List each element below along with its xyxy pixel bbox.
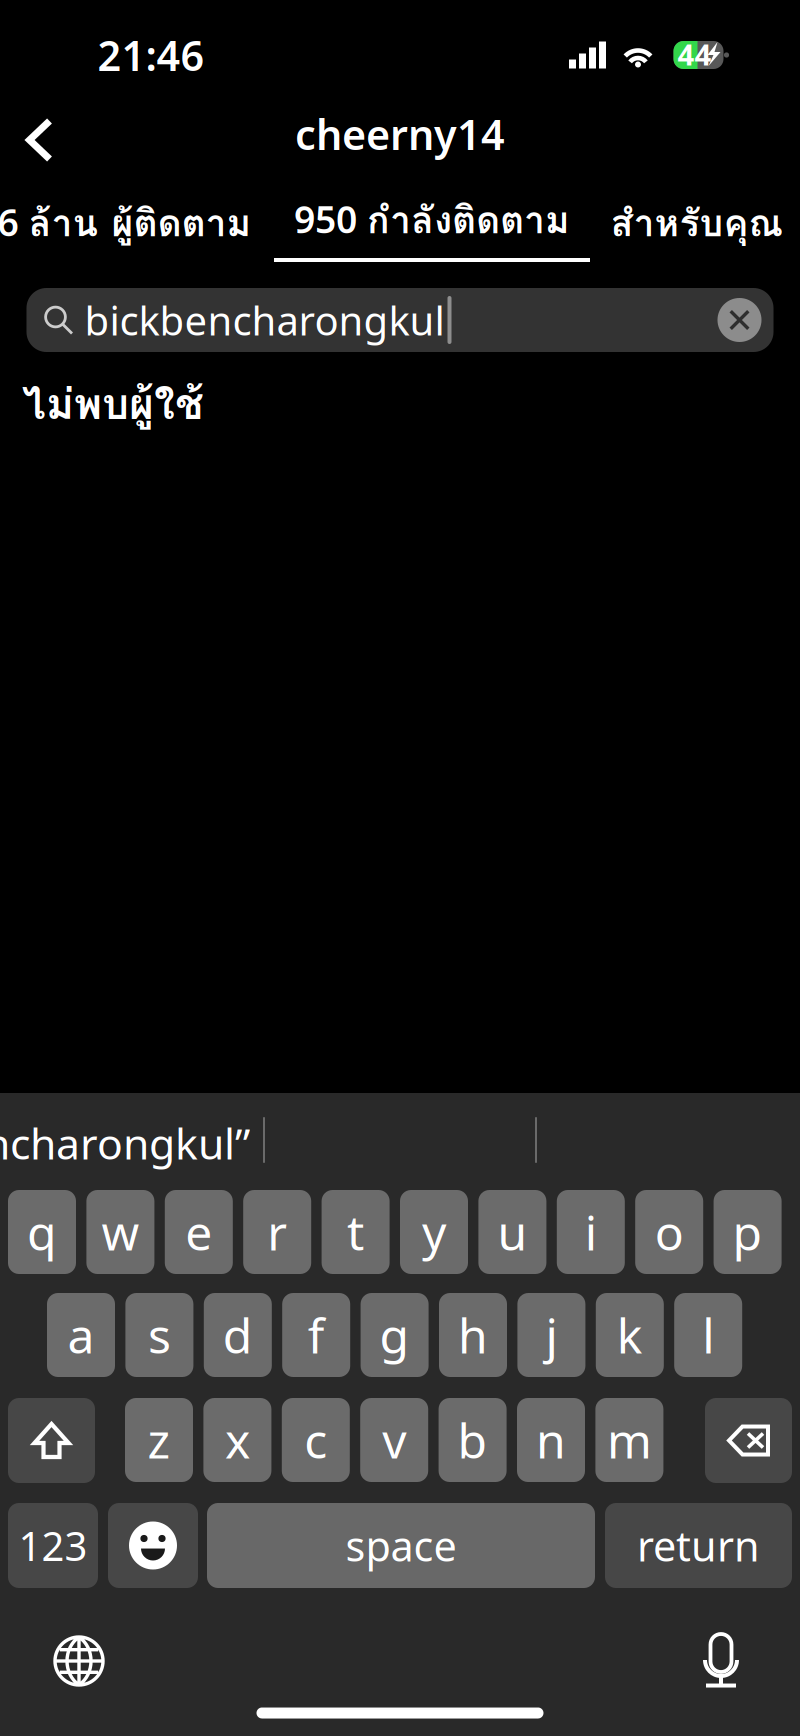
staticText: สำหรับคุณ bbox=[610, 194, 783, 252]
staticText: 21:46 bbox=[97, 28, 204, 82]
staticText: k bbox=[617, 1303, 643, 1367]
staticText: ไม่พบผู้ใช้ bbox=[22, 371, 204, 437]
staticText: n bbox=[536, 1408, 566, 1472]
button[interactable]: h bbox=[439, 1293, 507, 1377]
staticText: x bbox=[225, 1408, 250, 1472]
button[interactable]: 950 กำลังติดตาม bbox=[274, 180, 590, 266]
button[interactable]: k bbox=[596, 1293, 664, 1377]
staticText: 123 bbox=[18, 1519, 87, 1572]
button[interactable]: z bbox=[125, 1398, 193, 1482]
staticText: p bbox=[733, 1200, 763, 1264]
button[interactable]: space bbox=[207, 1503, 595, 1588]
button[interactable]: x bbox=[203, 1398, 271, 1482]
button[interactable]: Dictate bbox=[675, 1615, 767, 1707]
button[interactable]: t bbox=[322, 1190, 390, 1274]
button[interactable]: Delete bbox=[705, 1398, 792, 1483]
staticText: e bbox=[185, 1200, 212, 1264]
staticText: 950 กำลังติดตาม bbox=[294, 191, 570, 249]
staticText: space bbox=[345, 1518, 456, 1573]
staticText: bencharongkul” bbox=[0, 1115, 250, 1171]
button[interactable]: y bbox=[400, 1190, 468, 1274]
button[interactable]: a bbox=[47, 1293, 115, 1377]
staticText: o bbox=[655, 1200, 684, 1264]
staticText: y bbox=[422, 1200, 446, 1264]
staticText: a bbox=[67, 1303, 94, 1367]
staticText: g bbox=[380, 1303, 410, 1367]
staticText: cheerny14 bbox=[295, 107, 505, 161]
button[interactable]: return bbox=[605, 1503, 792, 1588]
staticText: 44 bbox=[677, 34, 711, 73]
staticText: u bbox=[497, 1200, 527, 1264]
staticText: b bbox=[458, 1408, 488, 1472]
staticText: i bbox=[585, 1200, 597, 1264]
button[interactable]: Emoji bbox=[108, 1503, 198, 1588]
button[interactable]: e bbox=[165, 1190, 233, 1274]
button[interactable]: d bbox=[204, 1293, 272, 1377]
staticText: c bbox=[304, 1408, 327, 1472]
staticText: bickbencharongkul bbox=[84, 293, 444, 346]
button[interactable]: n bbox=[517, 1398, 585, 1482]
staticText: r bbox=[267, 1200, 287, 1264]
button[interactable]: m bbox=[595, 1398, 663, 1482]
button[interactable]: i bbox=[557, 1190, 625, 1274]
button[interactable]: s bbox=[125, 1293, 193, 1377]
staticText: return bbox=[637, 1518, 760, 1573]
staticText: j bbox=[545, 1303, 557, 1367]
button[interactable]: o bbox=[635, 1190, 703, 1274]
staticText: m bbox=[607, 1408, 652, 1472]
button[interactable]: w bbox=[86, 1190, 154, 1274]
staticText: d bbox=[223, 1303, 253, 1367]
button[interactable]: 123 bbox=[8, 1503, 98, 1588]
button[interactable]: p bbox=[714, 1190, 782, 1274]
button[interactable]: j bbox=[517, 1293, 585, 1377]
staticText: 1.6 ล้าน ผู้ติดตาม bbox=[0, 194, 251, 252]
button[interactable]: b bbox=[439, 1398, 507, 1482]
button[interactable]: u bbox=[478, 1190, 546, 1274]
button[interactable]: Shift bbox=[8, 1398, 95, 1483]
staticText: v bbox=[382, 1408, 406, 1472]
button[interactable]: f bbox=[282, 1293, 350, 1377]
button[interactable]: v bbox=[360, 1398, 428, 1482]
button[interactable]: Back bbox=[1, 102, 77, 178]
staticText: h bbox=[458, 1303, 488, 1367]
button[interactable]: l bbox=[674, 1293, 742, 1377]
staticText: w bbox=[101, 1200, 139, 1264]
button[interactable]: สำหรับคุณ bbox=[597, 180, 797, 266]
staticText: s bbox=[148, 1303, 171, 1367]
button[interactable]: 1.6 ล้าน ผู้ติดตาม bbox=[0, 180, 252, 266]
button[interactable]: c bbox=[282, 1398, 350, 1482]
button[interactable]: bickbencharongkul bbox=[26, 288, 773, 352]
staticText: t bbox=[347, 1200, 364, 1264]
button[interactable]: g bbox=[361, 1293, 429, 1377]
button[interactable]: q bbox=[8, 1190, 76, 1274]
button[interactable]: Change keyboard bbox=[33, 1615, 125, 1707]
staticText: l bbox=[702, 1303, 714, 1367]
staticText: f bbox=[308, 1303, 325, 1367]
staticText: z bbox=[147, 1408, 170, 1472]
staticText: q bbox=[27, 1200, 57, 1264]
button[interactable]: r bbox=[243, 1190, 311, 1274]
